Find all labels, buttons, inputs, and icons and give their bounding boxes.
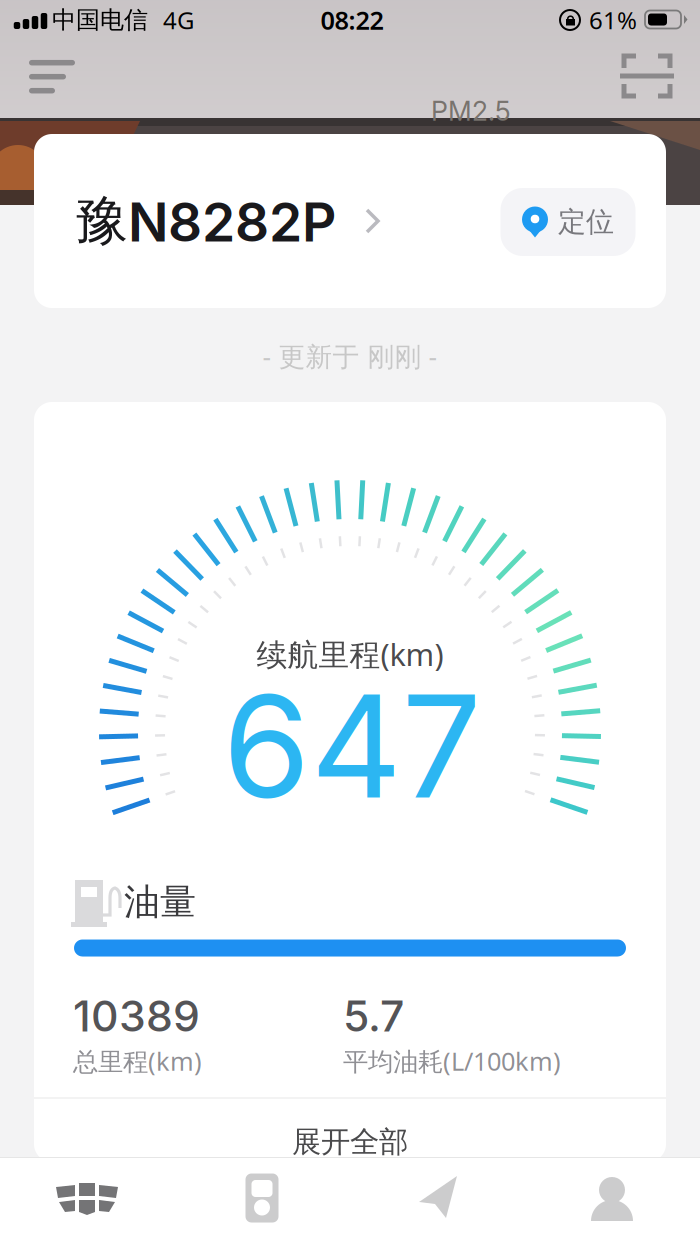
button[interactable]: 控制 xyxy=(245,1173,278,1222)
button[interactable]: 菜单 xyxy=(29,60,75,94)
staticText: - 更新于 刚刚 - xyxy=(262,338,437,374)
button[interactable]: 出行 xyxy=(419,1176,457,1218)
staticText: 中国电信 xyxy=(52,5,148,35)
staticText: 4G xyxy=(163,4,194,36)
staticText: 08:22 xyxy=(320,3,383,37)
button[interactable]: 豫N8282P xyxy=(75,187,415,255)
staticText: 定位 xyxy=(558,205,614,239)
staticText: 61% xyxy=(589,4,637,36)
staticText: 油量 xyxy=(124,880,196,924)
staticText: 647 xyxy=(222,660,481,831)
staticText: 续航里程(km) xyxy=(256,634,443,674)
button[interactable]: 车辆 xyxy=(54,1182,120,1216)
staticText: 平均油耗(L/100km) xyxy=(343,1044,561,1078)
staticText: 总里程(km) xyxy=(73,1044,202,1078)
staticText: PM2.5 xyxy=(431,95,511,127)
button[interactable]: 定位 xyxy=(500,188,635,256)
staticText: 5.7 xyxy=(343,990,404,1042)
button[interactable]: 我的 xyxy=(589,1177,635,1221)
staticText: 展开全部 xyxy=(292,1124,408,1160)
staticText: 豫N8282P xyxy=(75,187,336,255)
staticText: 10389 xyxy=(73,990,200,1042)
button[interactable]: 展开全部 xyxy=(34,1116,666,1168)
button[interactable]: 扫一扫 xyxy=(620,56,674,96)
